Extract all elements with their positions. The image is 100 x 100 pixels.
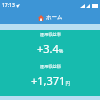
staticText: 17:13 bbox=[2, 2, 15, 9]
staticText: 運用収益率 bbox=[40, 32, 61, 37]
staticText: 運用収益額 bbox=[40, 64, 61, 69]
staticText: ホーム bbox=[46, 14, 63, 21]
staticText: +3.4% bbox=[37, 41, 64, 56]
button[interactable]: Home bbox=[0, 11, 100, 24]
other: Home bbox=[38, 15, 44, 21]
staticText: +1,371円 bbox=[31, 73, 70, 88]
